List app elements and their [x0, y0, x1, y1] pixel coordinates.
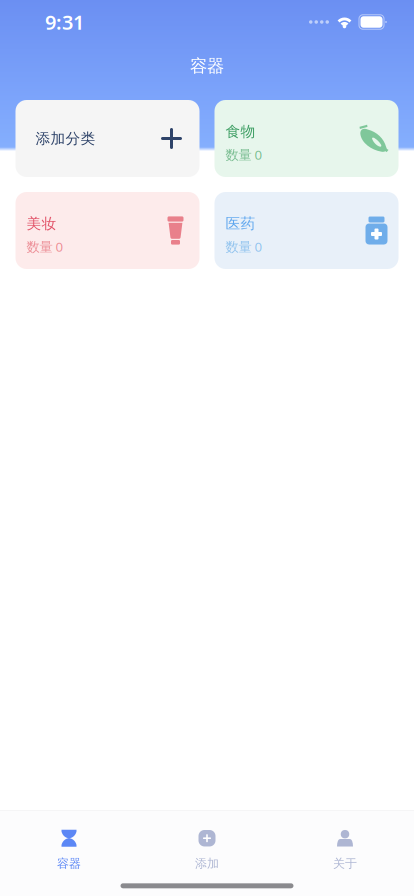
staticText: 数量 0 — [225, 146, 262, 163]
staticText: 数量 0 — [225, 238, 262, 255]
button[interactable]: 美妆 — [15, 192, 199, 269]
button[interactable]: 添加 — [138, 811, 276, 877]
staticText: 容器 — [190, 55, 224, 77]
button[interactable]: 医药 — [214, 192, 398, 269]
staticText: 美妆 — [26, 215, 56, 233]
staticText: 容器 — [57, 856, 81, 871]
staticText: 添加 — [195, 856, 219, 871]
staticText: 关于 — [333, 856, 357, 871]
button[interactable]: 关于 — [276, 811, 414, 877]
staticText: 添加分类 — [35, 129, 95, 147]
button[interactable]: 食物 — [214, 100, 398, 177]
button[interactable]: 容器 — [0, 811, 138, 877]
staticText: 9:31 — [45, 9, 84, 35]
staticText: 数量 0 — [26, 238, 63, 255]
button[interactable]: 添加分类 — [15, 100, 199, 177]
staticText: 医药 — [225, 215, 255, 233]
staticText: 食物 — [225, 123, 255, 141]
